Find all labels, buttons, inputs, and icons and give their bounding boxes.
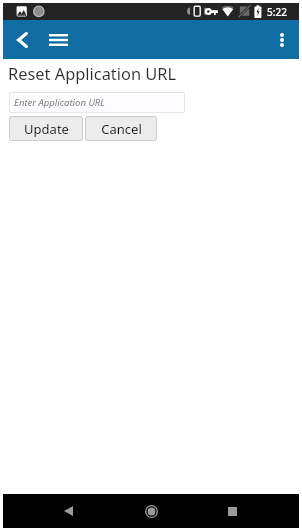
button[interactable]: Recents xyxy=(219,498,245,524)
button[interactable]: Home xyxy=(138,498,164,524)
button[interactable]: Back xyxy=(55,498,81,524)
staticText: Update xyxy=(24,120,69,138)
staticText: 5:22 xyxy=(267,5,287,19)
button[interactable]: Enter Application URL xyxy=(9,92,185,113)
staticText: Reset Application URL xyxy=(8,62,177,84)
staticText: Cancel xyxy=(101,120,142,138)
button[interactable]: More options xyxy=(267,25,297,55)
button[interactable]: Cancel xyxy=(85,116,157,141)
button[interactable]: Menu xyxy=(43,25,73,55)
staticText: Enter Application URL xyxy=(14,96,105,109)
button[interactable]: Back xyxy=(7,25,37,55)
button[interactable]: Update xyxy=(9,116,83,141)
